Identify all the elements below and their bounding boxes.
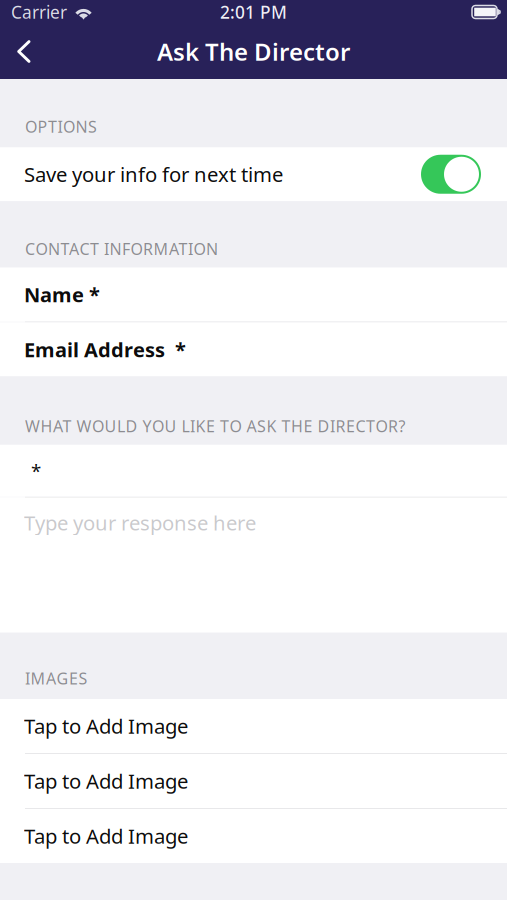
staticText: WHAT WOULD YOU LIKE TO ASK THE DIRECTOR? xyxy=(25,415,405,437)
staticText: Tap to Add Image xyxy=(24,767,188,795)
staticText: * xyxy=(31,458,41,483)
button[interactable]: Save your info for next time xyxy=(0,147,507,201)
button[interactable]: Tap to Add Image xyxy=(0,809,507,863)
button[interactable]: Name * xyxy=(0,267,507,321)
button[interactable]: Back xyxy=(0,24,48,79)
staticText: OPTIONS xyxy=(25,116,97,137)
button[interactable]: Tap to Add Image xyxy=(0,699,507,753)
staticText: IMAGES xyxy=(25,668,87,689)
staticText: 2:01 PM xyxy=(220,0,287,23)
staticText: Type your response here xyxy=(24,509,256,536)
button[interactable]: Tap to Add Image xyxy=(0,754,507,808)
staticText: Save your info for next time xyxy=(24,160,283,188)
staticText: CONTACT INFORMATION xyxy=(25,238,218,259)
staticText: Name * xyxy=(24,281,100,308)
staticText: Tap to Add Image xyxy=(24,712,188,740)
button[interactable]: Email Address * xyxy=(0,322,507,376)
staticText: Tap to Add Image xyxy=(24,822,188,850)
staticText: Carrier xyxy=(11,0,67,23)
button[interactable]: * xyxy=(0,445,507,497)
staticText: Email Address * xyxy=(24,336,186,363)
button[interactable]: Type your response here xyxy=(0,498,507,633)
staticText: Ask The Director xyxy=(157,36,350,67)
